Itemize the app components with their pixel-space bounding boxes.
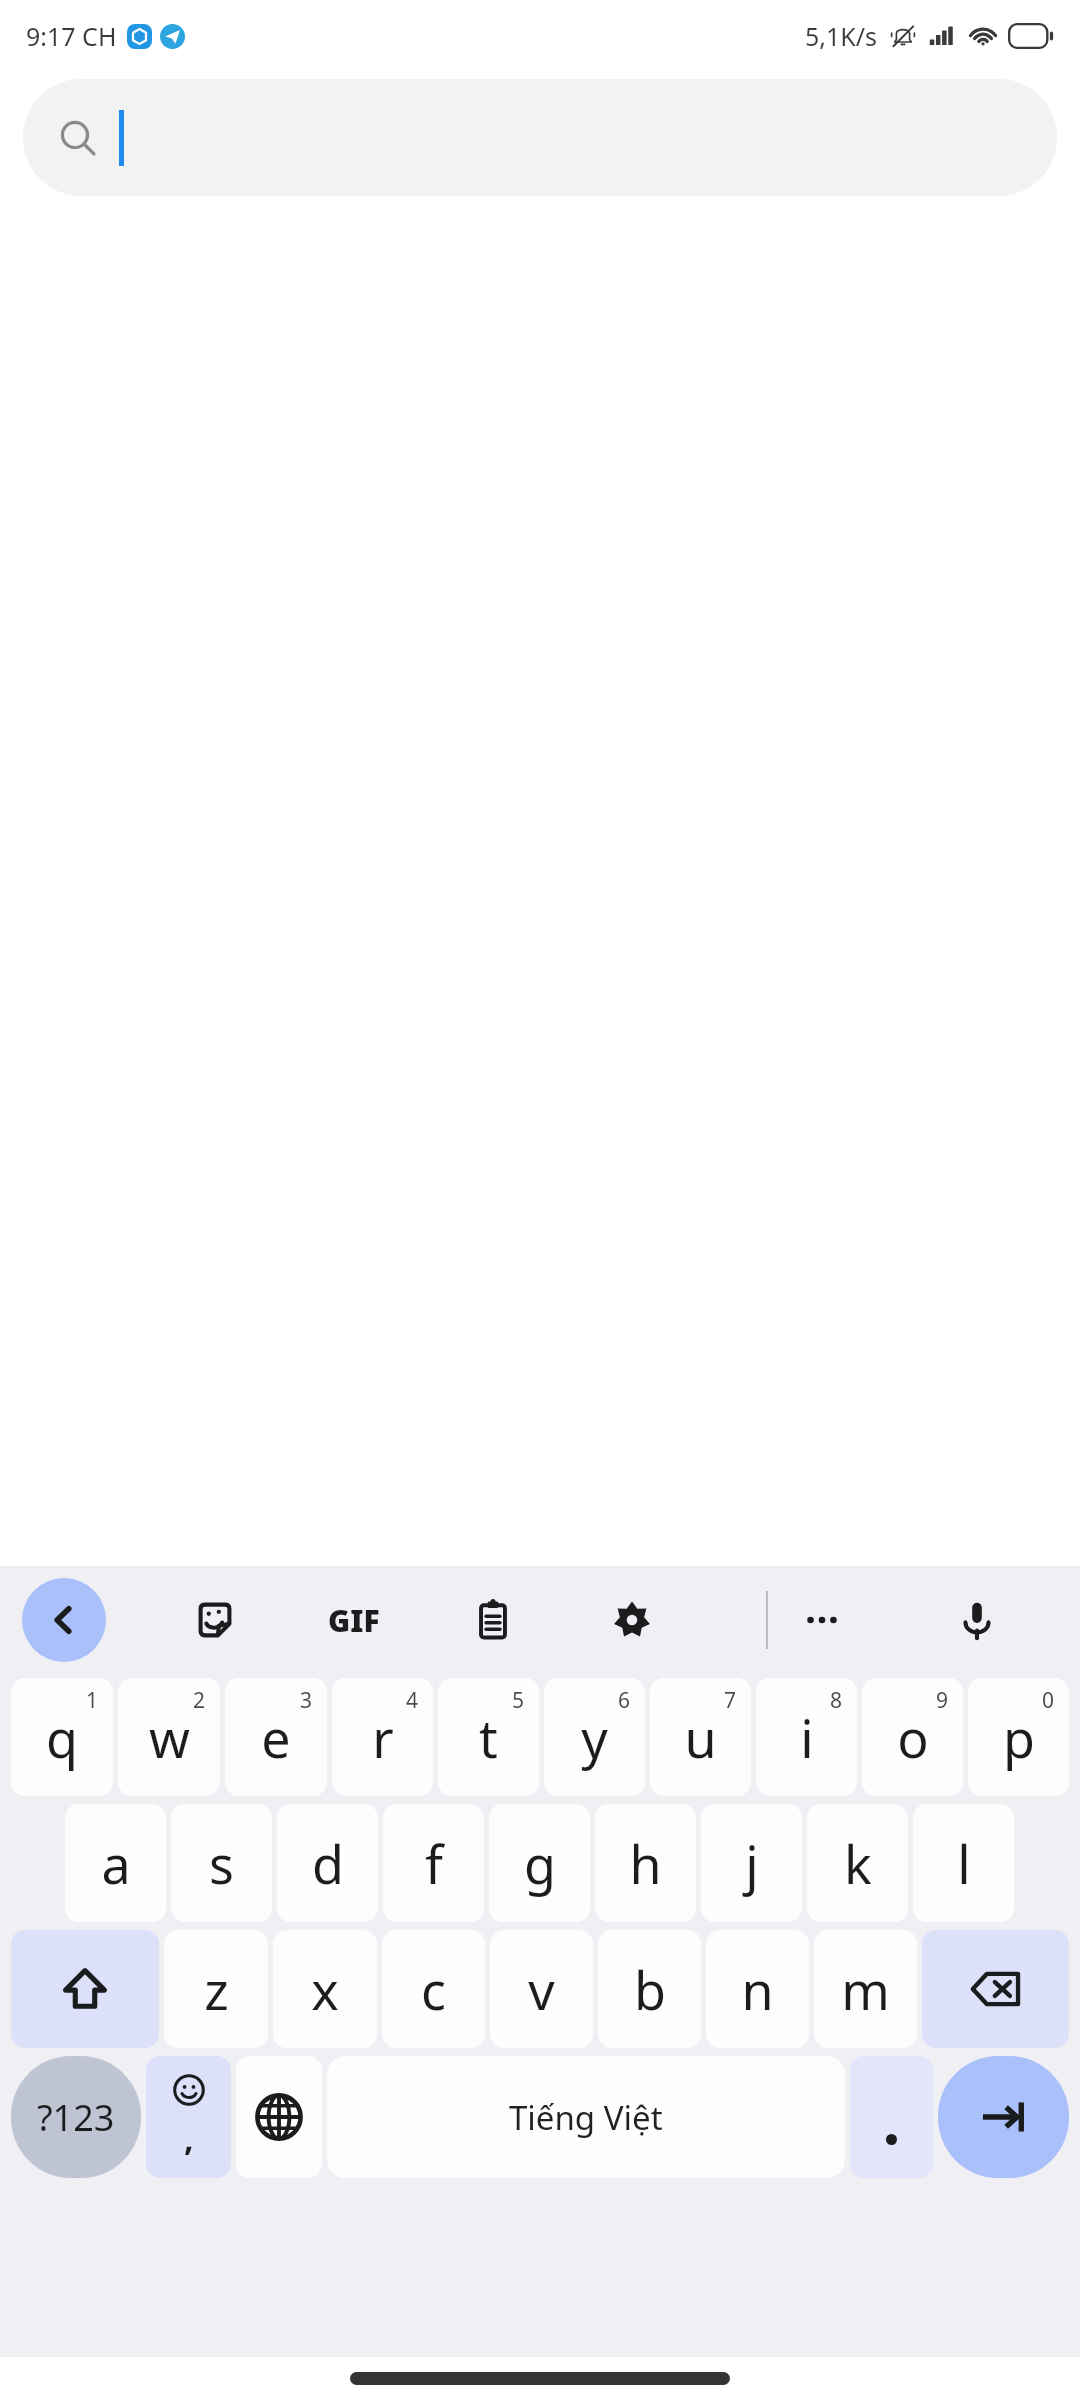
staticText: l <box>957 1828 971 1899</box>
button[interactable]: o <box>862 1678 963 1796</box>
button[interactable]: i <box>756 1678 857 1796</box>
button[interactable]: Backspace <box>922 1930 1069 2048</box>
staticText: , <box>184 2115 194 2161</box>
staticText: Tiếng Việt <box>509 2095 663 2140</box>
staticText: 3 <box>300 1686 313 1715</box>
staticText: w <box>149 1702 190 1773</box>
button[interactable]: GIF <box>314 1580 394 1660</box>
staticText: x <box>311 1954 339 2025</box>
button[interactable]: u <box>650 1678 751 1796</box>
button[interactable]: d <box>277 1804 378 1922</box>
staticText: p <box>1003 1702 1035 1773</box>
staticText: z <box>204 1954 229 2025</box>
button[interactable]: p <box>968 1678 1069 1796</box>
button[interactable]: Shift <box>11 1930 159 2048</box>
button[interactable]: m <box>814 1930 917 2048</box>
staticText: e <box>261 1702 291 1773</box>
button[interactable]: r <box>332 1678 433 1796</box>
staticText: 9:17 CH <box>26 19 117 53</box>
button[interactable]: j <box>701 1804 802 1922</box>
button[interactable]: h <box>595 1804 696 1922</box>
staticText: y <box>581 1702 608 1773</box>
staticText: 5,1K/s <box>805 19 878 53</box>
staticText: u <box>684 1702 717 1773</box>
button[interactable]: b <box>598 1930 701 2048</box>
button[interactable]: t <box>438 1678 539 1796</box>
staticText: GIF <box>328 1600 380 1641</box>
button[interactable]: n <box>706 1930 809 2048</box>
button[interactable]: Tiếng Việt <box>327 2056 845 2178</box>
staticText: 9 <box>936 1686 949 1715</box>
staticText: 4 <box>406 1686 419 1715</box>
staticText: f <box>425 1828 443 1899</box>
staticText: c <box>421 1954 446 2025</box>
staticText: o <box>897 1702 929 1773</box>
button[interactable]: e <box>225 1678 327 1796</box>
staticText: a <box>101 1828 131 1899</box>
button[interactable]: v <box>490 1930 593 2048</box>
button[interactable]: Emoji and comma <box>146 2056 231 2178</box>
staticText: m <box>841 1954 890 2025</box>
button[interactable]: More options <box>782 1580 862 1660</box>
staticText: ?123 <box>37 2093 115 2142</box>
button[interactable]: Close keyboard toolbar <box>22 1578 106 1662</box>
button[interactable]: ?123 <box>11 2056 141 2178</box>
staticText: 7 <box>724 1686 737 1715</box>
button[interactable]: a <box>65 1804 166 1922</box>
button[interactable]: c <box>382 1930 485 2048</box>
button[interactable]: Voice input <box>937 1580 1017 1660</box>
staticText: q <box>46 1702 78 1773</box>
staticText: i <box>800 1702 814 1773</box>
button[interactable]: Stickers <box>175 1580 255 1660</box>
button[interactable]: f <box>383 1804 484 1922</box>
button[interactable]: g <box>489 1804 590 1922</box>
button[interactable]: Enter <box>938 2056 1069 2178</box>
staticText: j <box>745 1828 759 1899</box>
staticText: 0 <box>1042 1686 1055 1715</box>
staticText: g <box>524 1828 556 1899</box>
staticText: 2 <box>193 1686 206 1715</box>
button[interactable]: y <box>544 1678 645 1796</box>
button[interactable]: k <box>807 1804 908 1922</box>
staticText: v <box>528 1954 555 2025</box>
button[interactable]: Period <box>850 2056 933 2178</box>
button[interactable]: s <box>171 1804 272 1922</box>
staticText: h <box>629 1828 662 1899</box>
staticText: 5 <box>512 1686 525 1715</box>
button[interactable]: x <box>273 1930 377 2048</box>
staticText: s <box>209 1828 234 1899</box>
button[interactable]: Change language <box>236 2056 322 2178</box>
staticText: t <box>479 1702 498 1773</box>
staticText: k <box>844 1828 872 1899</box>
button[interactable]: w <box>118 1678 220 1796</box>
staticText: 6 <box>618 1686 631 1715</box>
button[interactable] <box>23 79 1057 196</box>
staticText: r <box>372 1702 394 1773</box>
button[interactable]: z <box>164 1930 268 2048</box>
staticText: 1 <box>86 1686 99 1715</box>
button[interactable]: Settings <box>592 1580 672 1660</box>
staticText: 8 <box>830 1686 843 1715</box>
button[interactable]: Clipboard <box>453 1580 533 1660</box>
staticText: d <box>312 1828 344 1899</box>
staticText: n <box>741 1954 774 2025</box>
staticText: b <box>634 1954 666 2025</box>
button[interactable]: q <box>11 1678 113 1796</box>
button[interactable]: l <box>913 1804 1014 1922</box>
